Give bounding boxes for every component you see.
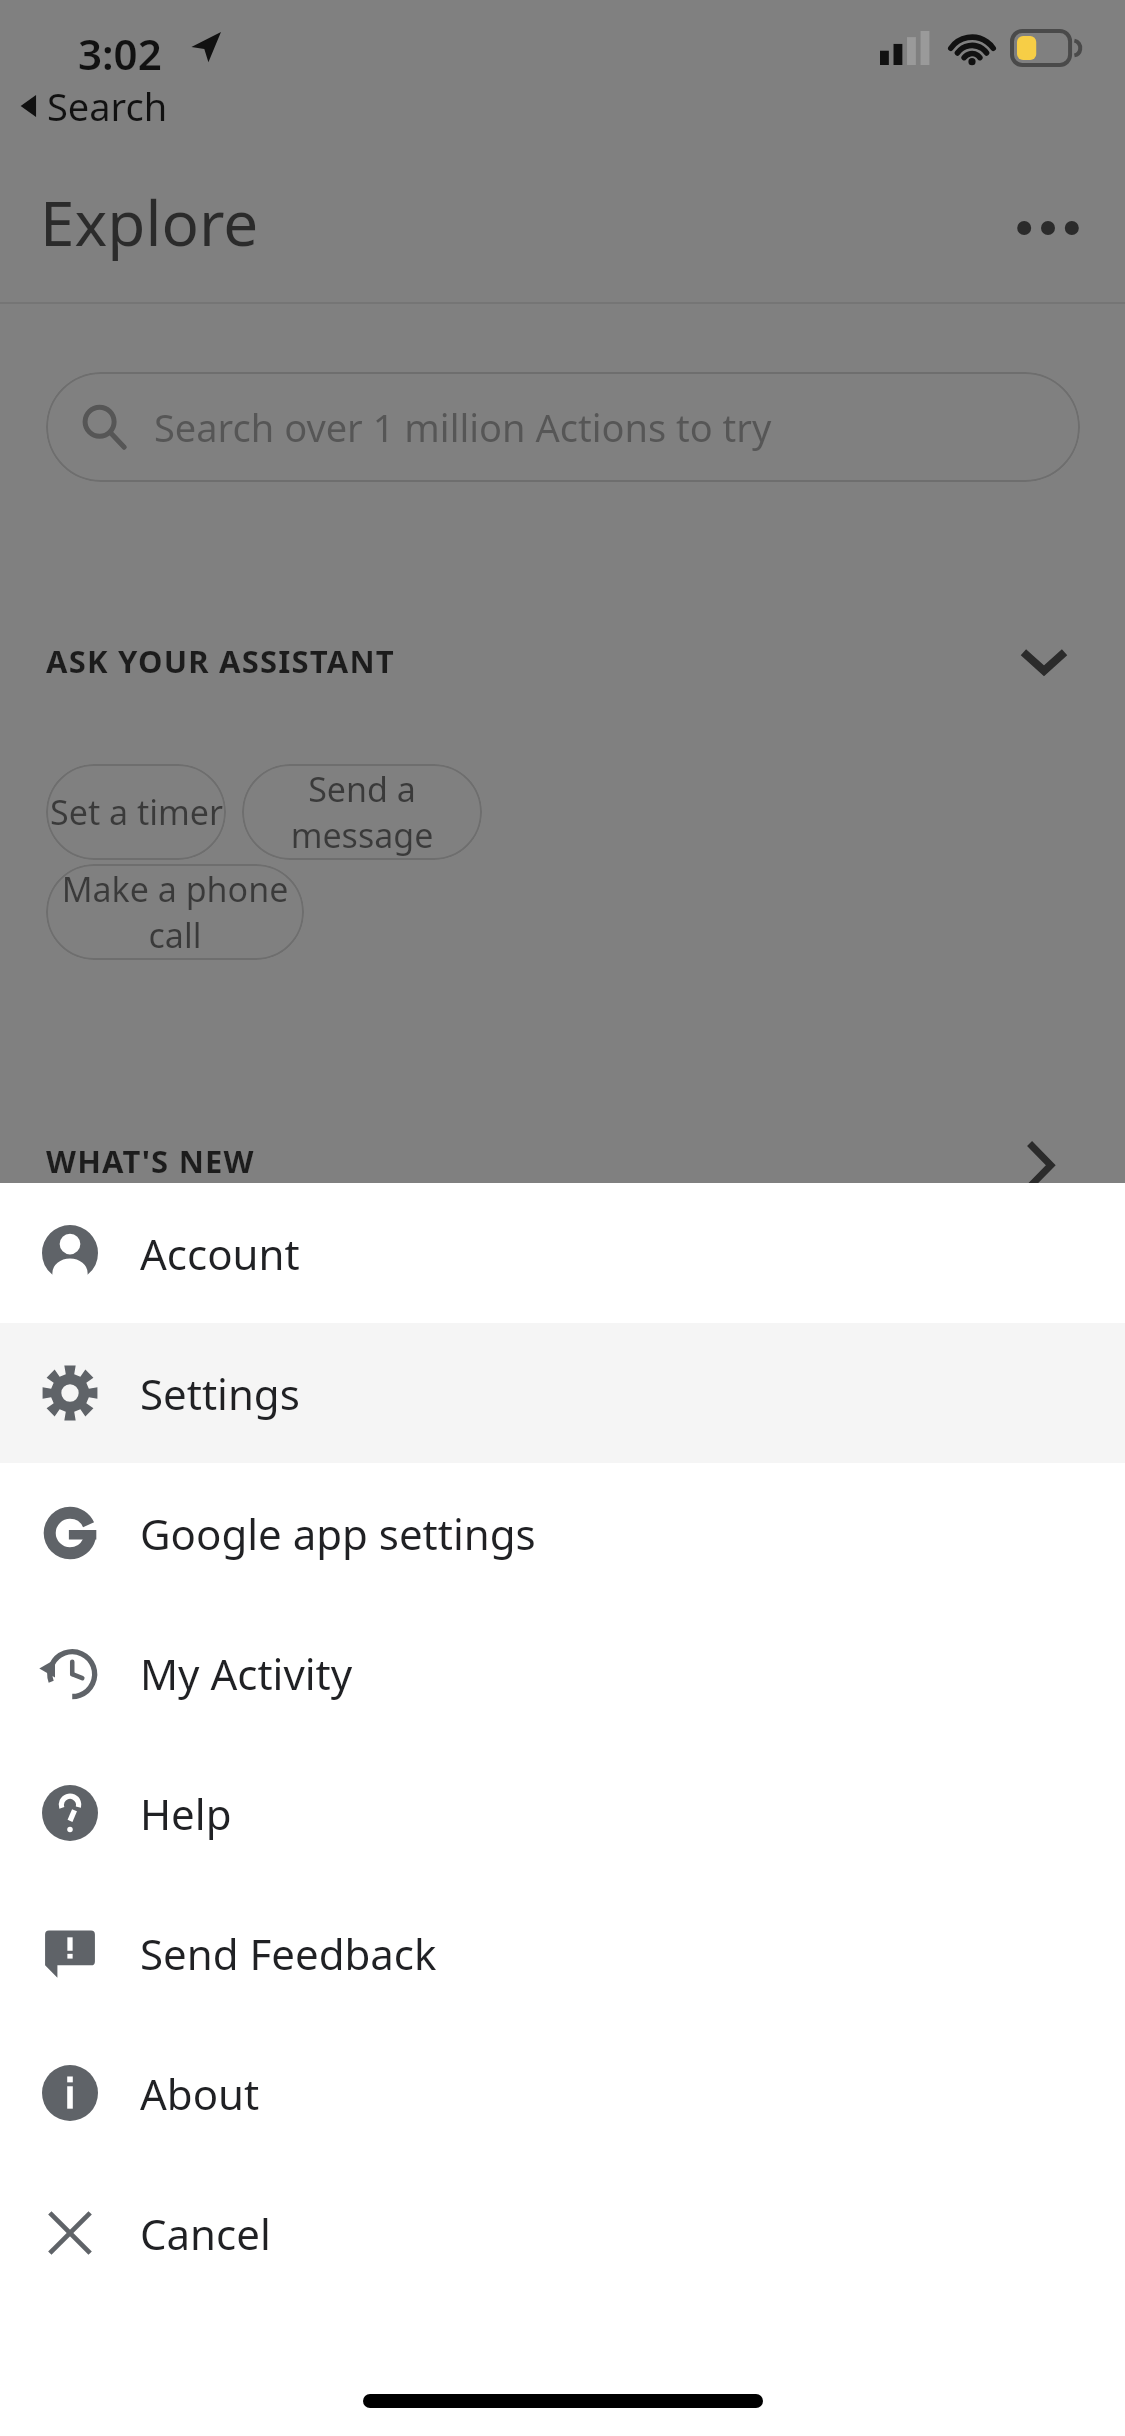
staticText: Set a timer bbox=[50, 789, 223, 835]
button[interactable]: Send a message bbox=[242, 764, 482, 860]
staticText: Search bbox=[47, 80, 168, 132]
staticText: Explore bbox=[40, 180, 259, 264]
button[interactable]: Collapse section bbox=[1000, 618, 1088, 706]
button[interactable]: My Activity bbox=[0, 1603, 1125, 1743]
staticText: Cancel bbox=[140, 2205, 271, 2262]
staticText: Help bbox=[140, 1785, 232, 1842]
staticText: Search over 1 million Actions to try bbox=[154, 401, 772, 453]
button[interactable]: Settings bbox=[0, 1323, 1125, 1463]
button[interactable]: Send Feedback bbox=[0, 1883, 1125, 2023]
staticText: My Activity bbox=[140, 1645, 353, 1702]
staticText: Make a phone call bbox=[46, 866, 304, 958]
staticText: Account bbox=[140, 1225, 300, 1282]
button[interactable]: About bbox=[0, 2023, 1125, 2163]
button[interactable]: Make a phone call bbox=[46, 864, 304, 960]
staticText: Send a message bbox=[242, 766, 482, 858]
staticText: Google app settings bbox=[140, 1505, 536, 1562]
button[interactable]: Google app settings bbox=[0, 1463, 1125, 1603]
staticText: About bbox=[140, 2065, 260, 2122]
button[interactable]: Set a timer bbox=[46, 764, 226, 860]
staticText: 3:02 bbox=[78, 25, 162, 82]
button[interactable]: Cancel bbox=[0, 2163, 1125, 2303]
button[interactable]: Help bbox=[0, 1743, 1125, 1883]
button[interactable]: Account bbox=[0, 1183, 1125, 1323]
staticText: WHAT'S NEW bbox=[46, 1140, 255, 1182]
staticText: Settings bbox=[140, 1365, 300, 1422]
staticText: Send Feedback bbox=[140, 1925, 437, 1982]
button[interactable]: Search over 1 million Actions to try bbox=[46, 372, 1080, 482]
staticText: ASK YOUR ASSISTANT bbox=[46, 640, 395, 682]
button[interactable]: Search bbox=[14, 78, 172, 134]
button[interactable]: More options bbox=[1000, 180, 1096, 276]
